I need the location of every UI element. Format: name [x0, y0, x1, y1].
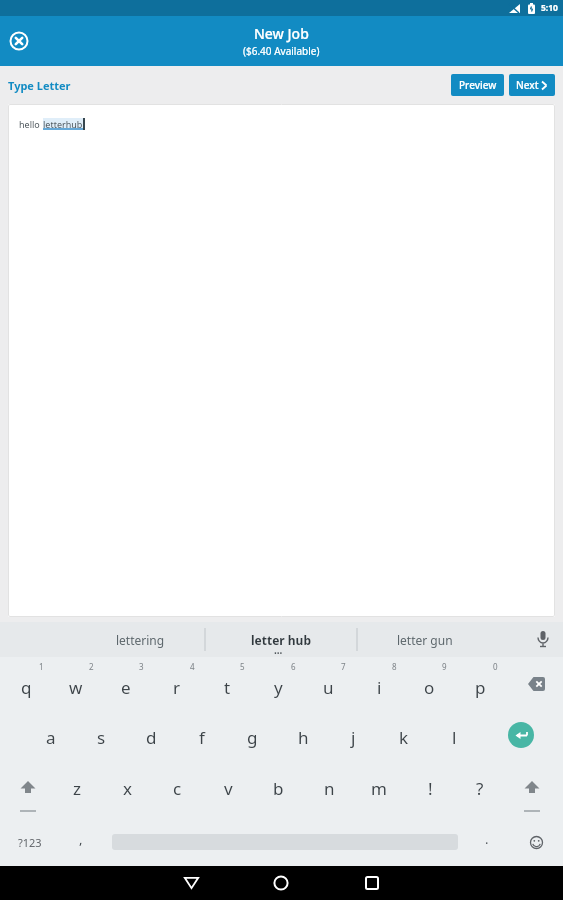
- staticText: !: [428, 777, 433, 800]
- staticText: y: [274, 676, 283, 699]
- staticText: g: [247, 726, 258, 749]
- button[interactable]: s: [79, 721, 123, 753]
- button[interactable]: o: [407, 671, 451, 703]
- staticText: p: [475, 676, 486, 699]
- staticText: x: [123, 777, 132, 800]
- button[interactable]: letter gun: [370, 622, 480, 657]
- button[interactable]: r: [155, 671, 199, 703]
- staticText: 2: [89, 661, 94, 672]
- staticText: 3: [139, 661, 144, 672]
- staticText: u: [323, 676, 334, 699]
- staticText: w: [69, 676, 83, 699]
- staticText: b: [273, 777, 284, 800]
- button[interactable]: x: [105, 772, 149, 804]
- button[interactable]: .: [465, 823, 509, 855]
- staticText: 0: [493, 661, 498, 672]
- button[interactable]: l: [432, 721, 476, 753]
- staticText: Preview: [459, 78, 497, 92]
- staticText: r: [173, 676, 181, 699]
- button[interactable]: b: [256, 772, 300, 804]
- button[interactable]: g: [230, 721, 274, 753]
- button[interactable]: [166, 866, 216, 900]
- staticText: e: [121, 676, 131, 699]
- button[interactable]: j: [331, 721, 375, 753]
- button[interactable]: [508, 722, 534, 748]
- staticText: letter gun: [397, 632, 453, 648]
- staticText: 6: [291, 661, 296, 672]
- button[interactable]: ?: [458, 772, 502, 804]
- button[interactable]: u: [306, 671, 350, 703]
- button[interactable]: y: [256, 671, 300, 703]
- staticText: New Job: [254, 24, 309, 43]
- button[interactable]: [512, 666, 560, 702]
- staticText: 1: [39, 661, 44, 672]
- staticText: 5:10: [541, 2, 558, 14]
- button[interactable]: [8, 770, 48, 806]
- staticText: ?: [476, 777, 484, 800]
- button[interactable]: [347, 866, 397, 900]
- staticText: o: [424, 676, 435, 699]
- staticText: 8: [392, 661, 397, 672]
- staticText: k: [399, 726, 409, 749]
- staticText: 7: [341, 661, 346, 672]
- button[interactable]: t: [205, 671, 249, 703]
- button[interactable]: a: [29, 721, 73, 753]
- staticText: j: [351, 726, 356, 749]
- staticText: Type Letter: [8, 78, 71, 93]
- staticText: .: [485, 830, 489, 848]
- button[interactable]: [5, 27, 33, 55]
- staticText: i: [377, 676, 382, 699]
- staticText: c: [173, 777, 182, 800]
- button[interactable]: n: [307, 772, 351, 804]
- button[interactable]: z: [55, 772, 99, 804]
- button[interactable]: [256, 866, 306, 900]
- button[interactable]: [512, 770, 552, 806]
- staticText: 9: [442, 661, 447, 672]
- staticText: lettering: [116, 632, 165, 648]
- button[interactable]: e: [104, 671, 148, 703]
- staticText: d: [146, 726, 157, 749]
- button[interactable]: p: [458, 671, 502, 703]
- staticText: z: [73, 777, 81, 800]
- button[interactable]: k: [382, 721, 426, 753]
- button[interactable]: f: [180, 721, 224, 753]
- button[interactable]: !: [408, 772, 452, 804]
- button[interactable]: h: [281, 721, 325, 753]
- staticText: h: [298, 726, 309, 749]
- button[interactable]: d: [129, 721, 173, 753]
- button[interactable]: Preview: [451, 74, 504, 96]
- staticText: m: [371, 777, 387, 800]
- button[interactable]: [520, 826, 552, 858]
- staticText: t: [224, 676, 231, 699]
- staticText: v: [224, 777, 233, 800]
- staticText: hello: [19, 118, 43, 130]
- button[interactable]: lettering: [85, 622, 195, 657]
- staticText: letter hub: [251, 632, 311, 648]
- button[interactable]: Next: [509, 74, 555, 96]
- staticText: 5: [240, 661, 245, 672]
- button[interactable]: w: [54, 671, 98, 703]
- staticText: f: [199, 726, 205, 749]
- staticText: s: [97, 726, 106, 749]
- button[interactable]: v: [206, 772, 250, 804]
- button[interactable]: ?123: [8, 826, 52, 858]
- staticText: Next: [516, 78, 539, 92]
- button[interactable]: m: [357, 772, 401, 804]
- staticText: a: [46, 726, 56, 749]
- button[interactable]: c: [155, 772, 199, 804]
- button[interactable]: letter hub: [215, 622, 347, 657]
- staticText: q: [21, 676, 32, 699]
- staticText: ...: [274, 643, 283, 657]
- staticText: ($6.40 Available): [243, 44, 320, 58]
- staticText: l: [452, 726, 457, 749]
- button[interactable]: ,: [59, 823, 103, 855]
- staticText: ?123: [18, 835, 42, 850]
- staticText: ,: [79, 830, 83, 848]
- button[interactable]: q: [4, 671, 48, 703]
- button[interactable]: i: [357, 671, 401, 703]
- staticText: letterhub: [43, 118, 83, 130]
- staticText: n: [324, 777, 335, 800]
- staticText: 4: [190, 661, 195, 672]
